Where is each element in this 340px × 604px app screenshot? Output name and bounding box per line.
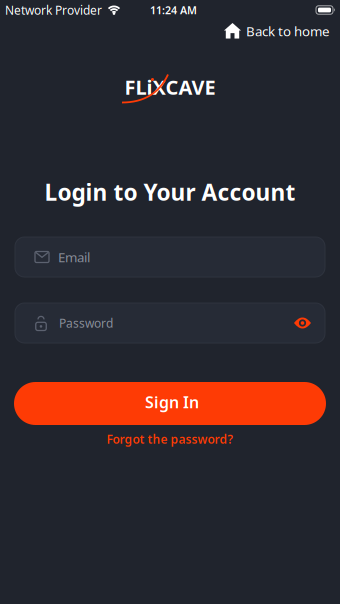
staticText: Login to Your Account	[44, 177, 295, 207]
staticText: 11:24 AM	[150, 3, 197, 17]
button[interactable]: Back to home	[224, 22, 330, 40]
staticText: Forgot the password?	[106, 431, 233, 447]
staticText: Password	[59, 315, 113, 331]
button[interactable]: Forgot the password?	[106, 431, 233, 447]
staticText: Email	[58, 248, 90, 266]
staticText: Sign In	[145, 391, 199, 413]
staticText: Back to home	[246, 22, 330, 40]
button[interactable]: Sign In	[14, 382, 326, 425]
staticText: FLiXCAVE	[124, 74, 215, 100]
staticText: Network Provider	[5, 2, 102, 18]
button[interactable]: Show password	[294, 316, 311, 329]
